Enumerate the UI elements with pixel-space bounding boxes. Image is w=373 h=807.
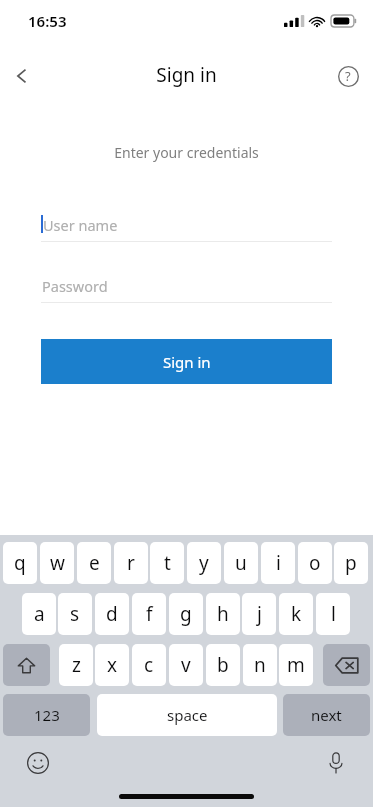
staticText: g	[180, 601, 192, 627]
staticText: z	[72, 652, 81, 678]
button[interactable]: p	[334, 542, 368, 584]
button[interactable]: j	[242, 593, 276, 635]
button[interactable]: c	[132, 644, 166, 686]
staticText: Sign in	[0, 62, 373, 88]
staticText: l	[331, 601, 336, 627]
button[interactable]: v	[169, 644, 203, 686]
staticText: ?	[345, 67, 351, 85]
staticText: t	[164, 550, 171, 576]
staticText: p	[345, 550, 357, 576]
button[interactable]: y	[187, 542, 221, 584]
button[interactable]: i	[261, 542, 295, 584]
staticText: 16:53	[28, 11, 67, 31]
staticText: b	[217, 652, 229, 678]
button[interactable]: x	[95, 644, 129, 686]
staticText: c	[144, 652, 154, 678]
button[interactable]: e	[77, 542, 111, 584]
button[interactable]: a	[22, 593, 56, 635]
button[interactable]: o	[298, 542, 332, 584]
staticText: Sign in	[163, 352, 211, 372]
staticText: 123	[34, 705, 60, 725]
staticText: o	[309, 550, 321, 576]
button[interactable]: Voice input	[318, 745, 354, 781]
button[interactable]: Password	[41, 268, 332, 303]
button[interactable]: m	[279, 644, 313, 686]
staticText: space	[167, 705, 208, 725]
staticText: y	[199, 550, 209, 576]
staticText: i	[276, 550, 281, 576]
button[interactable]: Help	[328, 56, 368, 96]
staticText: r	[127, 550, 135, 576]
button[interactable]: k	[279, 593, 313, 635]
button[interactable]: Shift	[3, 644, 50, 686]
staticText: s	[70, 601, 80, 627]
button[interactable]: Sign in	[41, 339, 332, 384]
button[interactable]: w	[40, 542, 74, 584]
button[interactable]: next	[283, 694, 370, 736]
staticText: a	[34, 601, 45, 627]
button[interactable]: space	[97, 694, 277, 736]
button[interactable]: t	[150, 542, 184, 584]
button[interactable]: l	[316, 593, 350, 635]
button[interactable]: z	[59, 644, 93, 686]
button[interactable]: n	[243, 644, 277, 686]
button[interactable]: s	[58, 593, 92, 635]
staticText: v	[181, 652, 191, 678]
button[interactable]: Back	[2, 56, 42, 96]
staticText: j	[257, 601, 262, 627]
button[interactable]: b	[206, 644, 240, 686]
staticText: k	[291, 601, 302, 627]
button[interactable]: Backspace	[323, 644, 370, 686]
staticText: q	[14, 550, 26, 576]
button[interactable]: User name	[41, 207, 332, 242]
button[interactable]: 123	[3, 694, 90, 736]
staticText: f	[146, 601, 153, 627]
button[interactable]: r	[114, 542, 148, 584]
staticText: d	[106, 601, 118, 627]
button[interactable]: d	[95, 593, 129, 635]
staticText: User name	[43, 215, 118, 235]
staticText: Password	[42, 276, 108, 296]
staticText: next	[311, 705, 342, 725]
button[interactable]: h	[206, 593, 240, 635]
staticText: m	[287, 652, 305, 678]
staticText: Enter your credentials	[0, 143, 373, 162]
button[interactable]: f	[132, 593, 166, 635]
staticText: n	[254, 652, 266, 678]
button[interactable]: Emoji	[20, 745, 56, 781]
button[interactable]: g	[169, 593, 203, 635]
staticText: u	[235, 550, 247, 576]
button[interactable]: q	[3, 542, 37, 584]
staticText: h	[217, 601, 229, 627]
staticText: e	[89, 550, 100, 576]
staticText: x	[107, 652, 118, 678]
staticText: w	[50, 550, 65, 576]
button[interactable]: u	[224, 542, 258, 584]
